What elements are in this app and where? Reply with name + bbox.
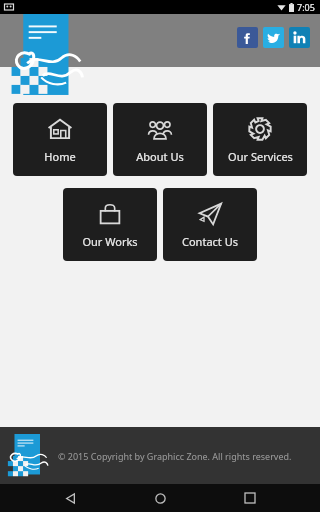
staticText: Home [44,149,76,164]
other: Graphicc Zone logo [7,434,51,478]
other: Graphicc Zone logo [10,14,88,102]
button[interactable]: Contact Us [163,188,257,261]
staticText: Our Works [82,234,138,249]
button[interactable]: Twitter [263,27,284,48]
button[interactable]: Back [50,484,90,512]
button[interactable]: Recent apps [230,484,270,512]
button[interactable]: LinkedIn [289,27,310,48]
staticText: Contact Us [182,234,238,249]
button[interactable]: About Us [113,103,207,176]
button[interactable]: Home [140,484,180,512]
staticText: About Us [136,149,184,164]
button[interactable]: Our Works [63,188,157,261]
staticText: © 2015 Copyright by Graphicc Zone. All r… [58,450,292,462]
staticText: 7:05 [297,1,315,13]
button[interactable]: Our Services [213,103,307,176]
staticText: Our Services [228,149,293,164]
button[interactable]: Facebook [237,27,258,48]
button[interactable]: Home [13,103,107,176]
